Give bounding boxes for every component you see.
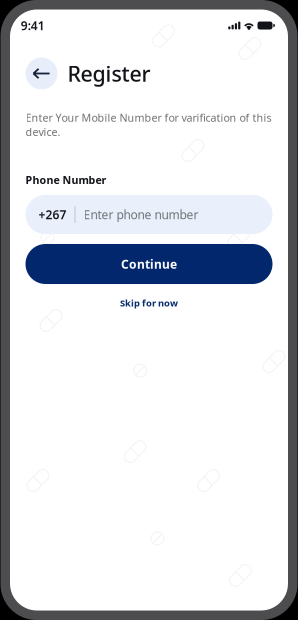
staticText: Enter Your Mobile Number for varificatio… xyxy=(25,110,271,139)
staticText: Continue xyxy=(121,256,177,272)
staticText: Skip for now xyxy=(120,297,178,309)
staticText: +267 xyxy=(38,206,66,222)
staticText: Phone Number xyxy=(25,173,106,187)
staticText: Register xyxy=(67,59,150,88)
button[interactable]: Skip for now xyxy=(25,294,272,312)
staticText: 9:41 xyxy=(21,17,45,33)
button[interactable]: Continue xyxy=(25,244,272,284)
button[interactable]: Back xyxy=(25,57,57,89)
staticText: Enter phone number xyxy=(83,206,198,222)
